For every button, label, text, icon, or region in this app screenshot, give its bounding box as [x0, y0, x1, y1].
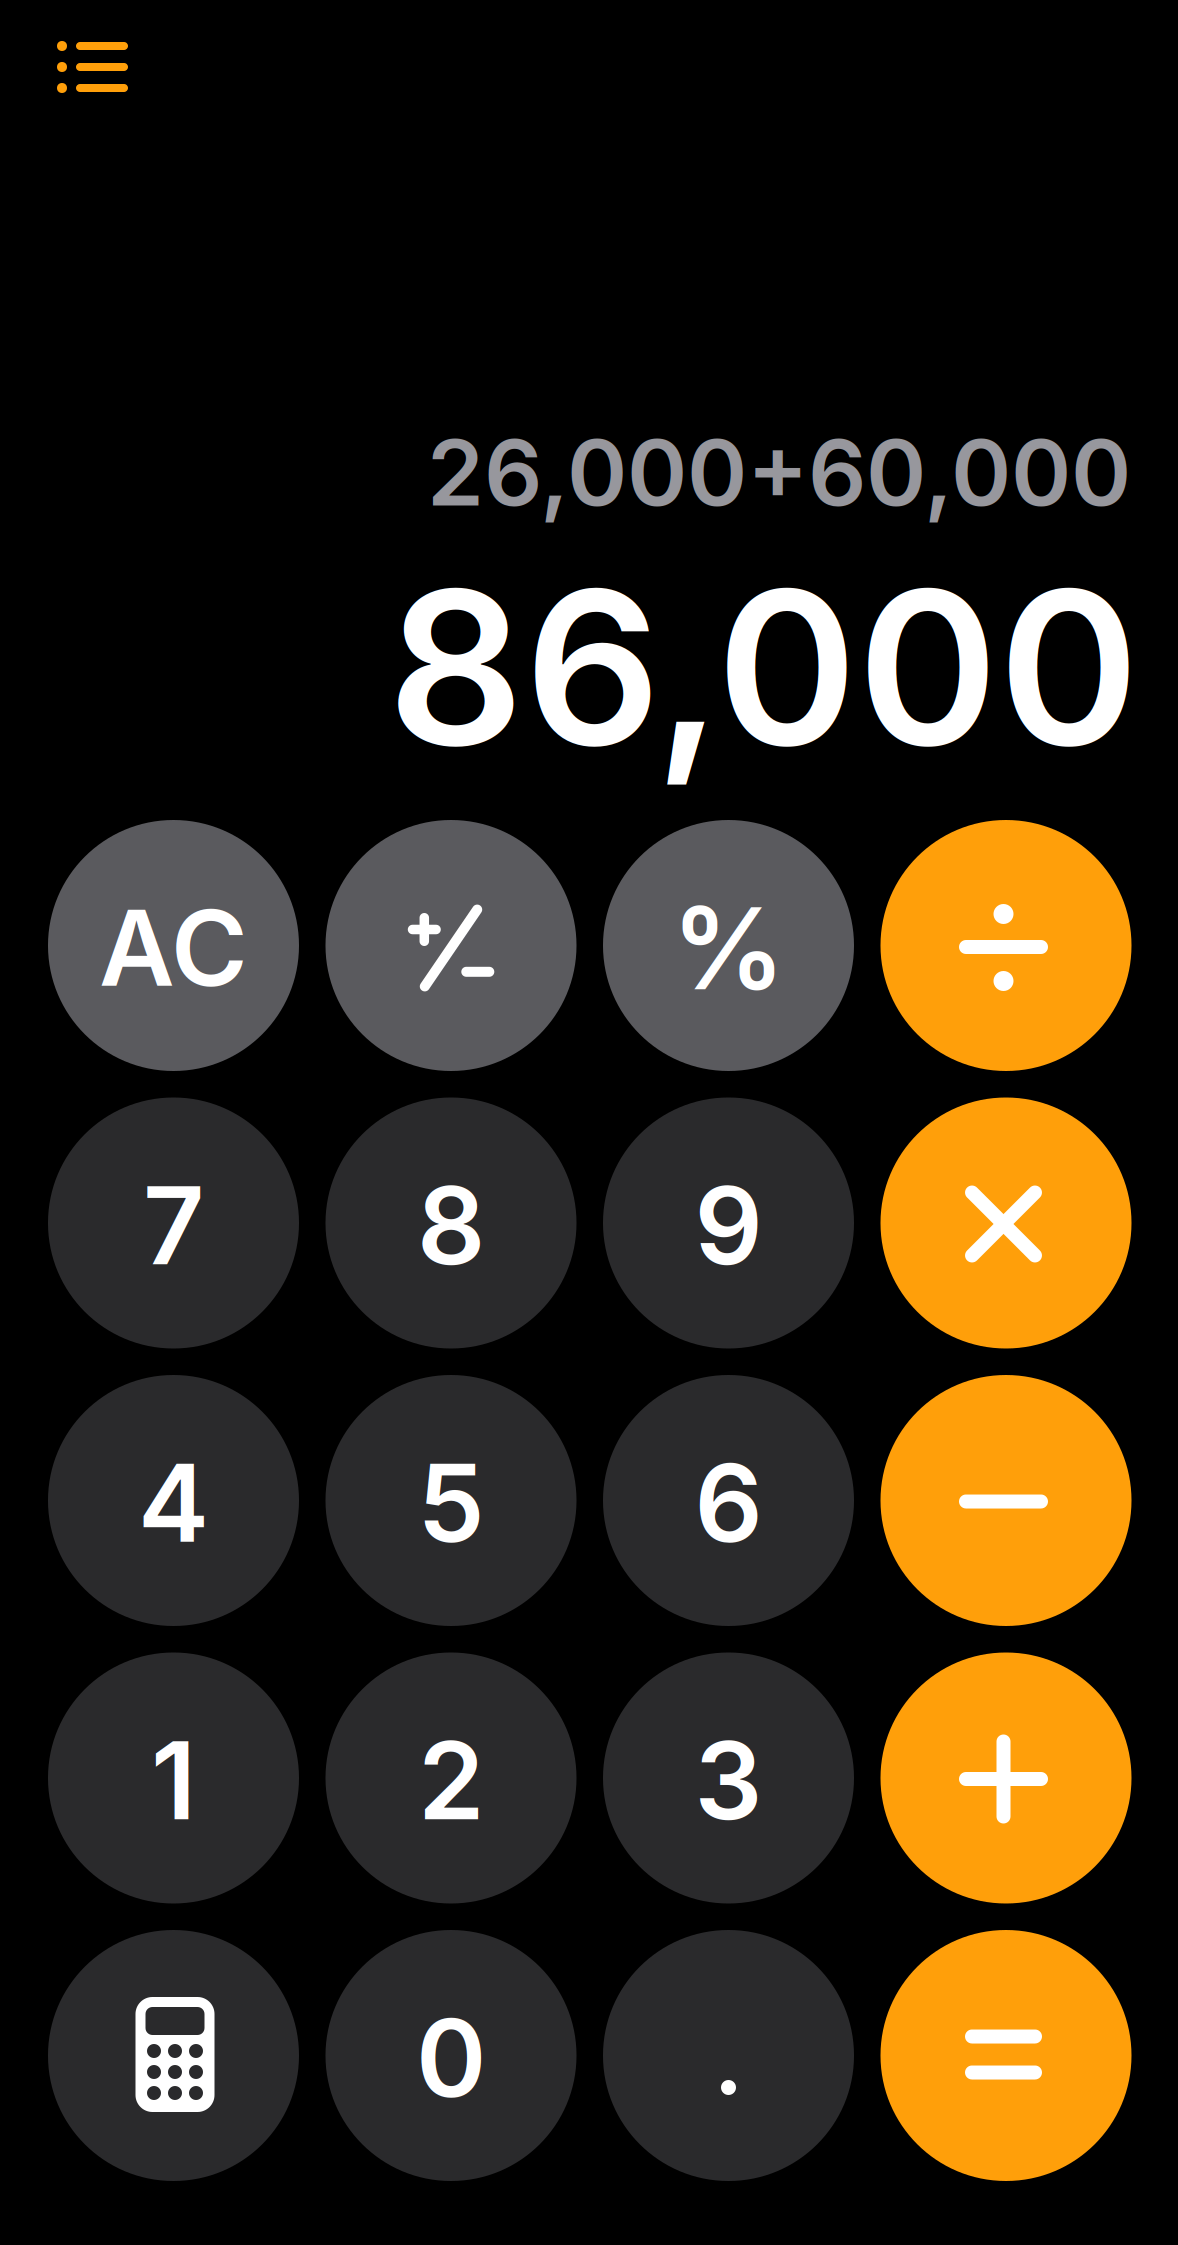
staticText: 0 — [416, 1993, 486, 2123]
button[interactable]: 5 — [325, 1375, 576, 1626]
button[interactable]: 8 — [325, 1097, 576, 1348]
staticText: 5 — [417, 1438, 484, 1568]
button[interactable]: AC — [48, 820, 299, 1071]
staticText: 86,000 — [387, 538, 1139, 796]
staticText: 8 — [417, 1161, 485, 1290]
button[interactable]: % — [603, 820, 854, 1071]
staticText: 6 — [694, 1438, 762, 1568]
button[interactable]: 0 — [325, 1930, 576, 2181]
staticText: 4 — [138, 1438, 209, 1568]
staticText: 2 — [418, 1716, 484, 1845]
button[interactable]: 4 — [48, 1375, 299, 1626]
button[interactable]: Calculator mode — [48, 1930, 299, 2181]
button[interactable]: Subtract — [880, 1375, 1131, 1626]
staticText: % — [671, 879, 785, 1016]
button[interactable]: Multiply — [880, 1097, 1131, 1348]
staticText: 9 — [694, 1161, 762, 1290]
button[interactable]: Plus minus — [325, 820, 576, 1071]
button[interactable]: 7 — [48, 1097, 299, 1348]
button[interactable]: Decimal point — [603, 1930, 854, 2181]
button[interactable]: 9 — [603, 1097, 854, 1348]
staticText: 3 — [694, 1716, 762, 1845]
staticText: 26,000+60,000 — [427, 417, 1131, 527]
button[interactable]: Divide — [880, 820, 1131, 1071]
button[interactable]: 1 — [48, 1652, 299, 1903]
staticText: AC — [99, 885, 248, 1011]
button[interactable]: 2 — [325, 1652, 576, 1903]
button[interactable]: Equals — [880, 1930, 1131, 2181]
staticText: 7 — [143, 1161, 204, 1290]
button[interactable]: 3 — [603, 1652, 854, 1903]
button[interactable]: 6 — [603, 1375, 854, 1626]
button[interactable]: History — [57, 28, 153, 106]
staticText: 1 — [151, 1716, 196, 1845]
button[interactable]: Add — [880, 1652, 1131, 1903]
